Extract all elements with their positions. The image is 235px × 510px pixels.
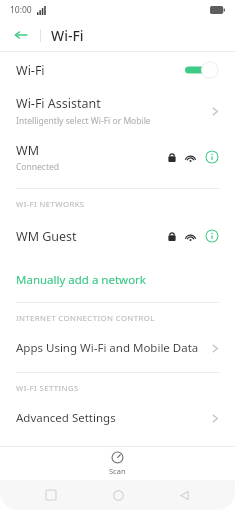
- staticText: Apps Using Wi-Fi and Mobile Data: [16, 340, 211, 356]
- button[interactable]: Home: [103, 480, 133, 510]
- button[interactable]: Network details: [205, 229, 219, 243]
- staticText: 10:00: [10, 4, 32, 16]
- button[interactable]: WM Guest: [0, 219, 235, 253]
- button[interactable]: Wi-Fi: [0, 52, 235, 88]
- staticText: Manually add a network: [16, 272, 146, 288]
- staticText: WI-FI SETTINGS: [16, 383, 79, 394]
- staticText: WM Guest: [16, 228, 77, 245]
- button[interactable]: Back: [169, 480, 199, 510]
- button[interactable]: Recents: [36, 480, 66, 510]
- button[interactable]: Advanced Settings: [0, 403, 235, 433]
- button[interactable]: Manually add a network: [0, 267, 235, 293]
- button[interactable]: Back: [8, 22, 34, 48]
- staticText: Intelligently select Wi-Fi or Mobile: [16, 115, 151, 127]
- button[interactable]: Network details: [205, 150, 219, 164]
- button[interactable]: Scan: [0, 447, 235, 480]
- button[interactable]: WM: [0, 134, 235, 180]
- staticText: INTERNET CONNECTION CONTROL: [16, 313, 155, 324]
- button[interactable]: Apps Using Wi-Fi and Mobile Data: [0, 333, 235, 363]
- staticText: Scan: [109, 466, 126, 476]
- button[interactable]: Wi-Fi toggle: [185, 61, 219, 79]
- button[interactable]: Wi-Fi Assistant: [0, 88, 235, 134]
- staticText: WI-FI NETWORKS: [16, 199, 85, 210]
- staticText: Advanced Settings: [16, 410, 211, 426]
- staticText: Connected: [16, 161, 59, 173]
- staticText: Wi-Fi: [51, 26, 84, 45]
- staticText: Wi-Fi Assistant: [16, 95, 101, 112]
- staticText: Wi-Fi: [16, 62, 45, 79]
- staticText: WM: [16, 142, 39, 159]
